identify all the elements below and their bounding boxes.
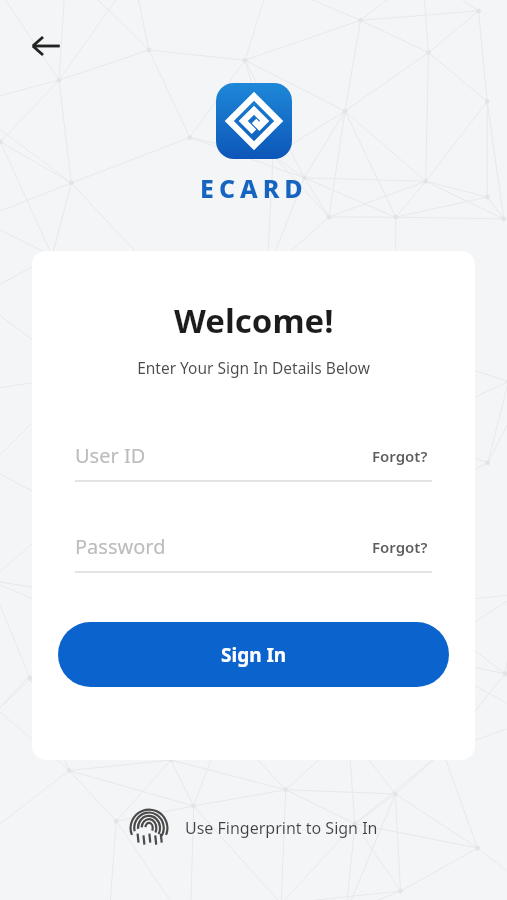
other: ECARD logo [216, 83, 292, 159]
button[interactable]: Sign In [58, 622, 449, 687]
staticText: Forgot? [372, 446, 428, 466]
staticText: Welcome! [174, 298, 334, 343]
button[interactable]: Forgot? [368, 443, 432, 469]
staticText: User ID [75, 442, 146, 469]
button[interactable]: Fingerprint [119, 803, 388, 853]
button[interactable]: User ID [75, 442, 368, 469]
button[interactable]: Back [18, 18, 74, 74]
staticText: Enter Your Sign In Details Below [137, 357, 370, 378]
other: Fingerprint [129, 808, 169, 848]
button[interactable]: Forgot? [368, 534, 432, 560]
staticText: Password [75, 533, 166, 560]
staticText: Forgot? [372, 537, 428, 557]
staticText: Use Fingerprint to Sign In [185, 817, 378, 839]
staticText: Sign In [221, 642, 287, 668]
staticText: ECARD [200, 171, 308, 205]
button[interactable]: Password [75, 533, 368, 560]
